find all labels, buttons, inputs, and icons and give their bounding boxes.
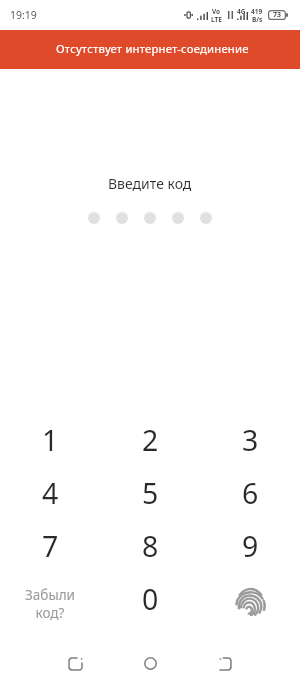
staticText: 73	[273, 10, 282, 20]
staticText: 6	[242, 474, 259, 513]
staticText: 419	[251, 7, 263, 16]
button[interactable]: Back	[50, 643, 100, 684]
button[interactable]: 1	[0, 414, 100, 467]
button[interactable]: Home	[125, 643, 175, 684]
button[interactable]: 2	[100, 414, 200, 467]
staticText: 1	[42, 421, 59, 460]
staticText: Введите код	[108, 174, 192, 193]
button[interactable]: Recent apps	[200, 643, 250, 684]
staticText: Vo	[212, 7, 221, 16]
button[interactable]: 3	[200, 414, 300, 467]
button[interactable]: 7	[0, 520, 100, 573]
staticText: 5	[142, 474, 159, 513]
staticText: 4G	[237, 7, 246, 16]
staticText: 9	[242, 527, 259, 566]
staticText: 7	[42, 527, 59, 566]
staticText: B/s	[252, 15, 263, 24]
button[interactable]: Unlock with fingerprint	[200, 573, 300, 626]
staticText: Забыли код?	[25, 586, 75, 622]
button[interactable]: 5	[100, 467, 200, 520]
staticText: 19:19	[10, 8, 37, 22]
staticText: 3	[242, 421, 259, 460]
staticText: 2	[142, 421, 159, 460]
staticText: Отсутствует интернет-соединение	[56, 41, 249, 56]
staticText: LTE	[211, 15, 222, 24]
button[interactable]: Забыли код?	[0, 573, 100, 626]
button[interactable]: 4	[0, 467, 100, 520]
staticText: 4	[42, 474, 59, 513]
button[interactable]: 6	[200, 467, 300, 520]
button[interactable]: 0	[100, 573, 200, 626]
button[interactable]: 8	[100, 520, 200, 573]
staticText: 0	[142, 580, 159, 619]
button[interactable]: 9	[200, 520, 300, 573]
staticText: 8	[142, 527, 159, 566]
